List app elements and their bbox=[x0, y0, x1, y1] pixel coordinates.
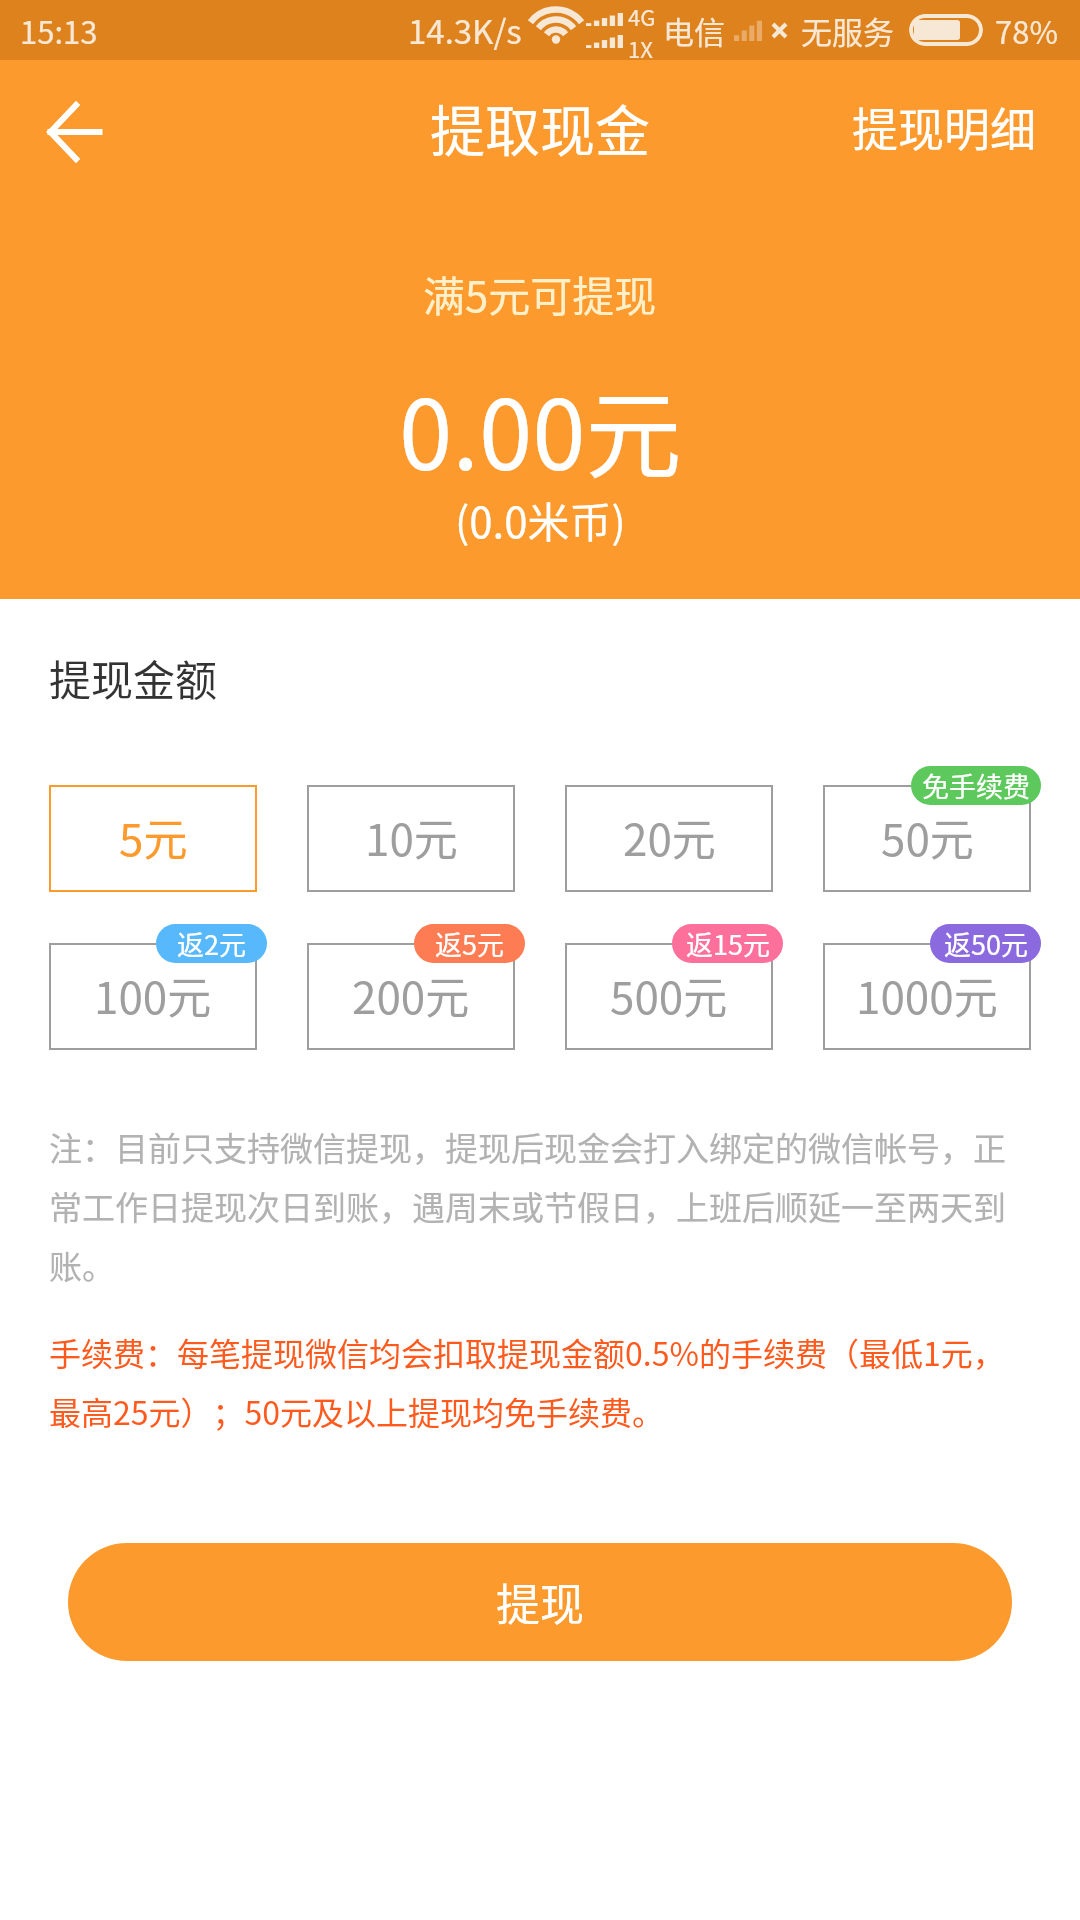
staticText: 50元 bbox=[881, 805, 974, 869]
button[interactable]: 100元 bbox=[49, 943, 257, 1050]
staticText: 78% bbox=[995, 8, 1058, 53]
staticText: 0.00元 bbox=[399, 359, 682, 498]
staticText: 100元 bbox=[94, 963, 212, 1027]
staticText: 10元 bbox=[365, 805, 458, 869]
staticText: 提现明细 bbox=[852, 93, 1036, 160]
staticText: 满5元可提现 bbox=[423, 263, 657, 324]
button[interactable]: 5元 bbox=[49, 785, 257, 892]
staticText: 返15元 bbox=[686, 924, 770, 963]
staticText: 5元 bbox=[119, 805, 188, 869]
staticText: 电信 bbox=[663, 8, 725, 53]
staticText: 返2元 bbox=[177, 924, 246, 963]
staticText: 返5元 bbox=[435, 924, 504, 963]
staticText: 15:13 bbox=[20, 8, 98, 53]
button[interactable]: 20元 bbox=[565, 785, 773, 892]
button[interactable]: 提现 bbox=[68, 1543, 1012, 1661]
button[interactable]: 提现明细 bbox=[828, 81, 1080, 180]
button[interactable]: Back bbox=[20, 75, 130, 185]
staticText: 返50元 bbox=[944, 924, 1028, 963]
button[interactable]: 1000元 bbox=[823, 943, 1031, 1050]
button[interactable]: 50元 bbox=[823, 785, 1031, 892]
staticText: 提现金额 bbox=[49, 647, 218, 708]
staticText: (0.0米币) bbox=[455, 489, 626, 550]
staticText: 1X bbox=[628, 32, 653, 60]
staticText: 提现 bbox=[496, 1570, 584, 1634]
staticText: 1000元 bbox=[856, 963, 998, 1027]
button[interactable]: 10元 bbox=[307, 785, 515, 892]
staticText: 200元 bbox=[352, 963, 470, 1027]
staticText: 手续费：每笔提现微信均会扣取提现金额0.5%的手续费（最低1元， 最高25元）；… bbox=[49, 1329, 1031, 1434]
staticText: 20元 bbox=[623, 805, 716, 869]
button[interactable]: 200元 bbox=[307, 943, 515, 1050]
staticText: 500元 bbox=[610, 963, 728, 1027]
button[interactable]: 500元 bbox=[565, 943, 773, 1050]
staticText: 无服务 bbox=[801, 8, 894, 53]
staticText: 免手续费 bbox=[922, 766, 1030, 805]
staticText: 注：目前只支持微信提现，提现后现金会打入绑定的微信帐号，正 常工作日提现次日到账… bbox=[49, 1123, 1031, 1289]
staticText: 提取现金 bbox=[430, 87, 651, 167]
staticText: 4G bbox=[628, 0, 656, 32]
staticText: 14.3K/s bbox=[408, 6, 522, 54]
